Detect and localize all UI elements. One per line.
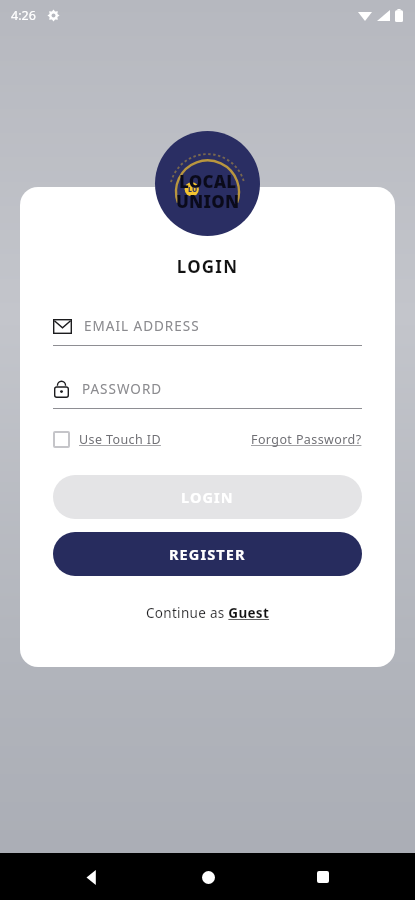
staticText: 4:26 xyxy=(11,7,36,24)
staticText: REGISTER xyxy=(169,544,246,564)
button[interactable]: Forgot Password? xyxy=(251,431,362,448)
button[interactable]: Password xyxy=(53,379,362,398)
button[interactable]: Back xyxy=(69,854,115,900)
staticText: LOCAL xyxy=(179,170,237,193)
staticText: LU xyxy=(188,185,198,195)
other: Password xyxy=(53,379,70,398)
staticText: Continue as Guest xyxy=(146,604,270,622)
button[interactable]: Continue as Guest xyxy=(53,604,362,622)
staticText: Forgot Password? xyxy=(251,431,362,448)
button[interactable]: Email xyxy=(53,317,362,335)
staticText: LOGIN xyxy=(53,255,362,278)
button[interactable]: LOGIN xyxy=(53,475,362,519)
other: Email xyxy=(53,319,72,334)
staticText: LOGIN xyxy=(181,487,234,507)
button[interactable]: REGISTER xyxy=(53,532,362,576)
button[interactable]: Recents xyxy=(300,854,346,900)
button[interactable]: Use Touch ID xyxy=(53,431,161,448)
staticText: Use Touch ID xyxy=(79,431,161,448)
staticText: EMAIL ADDRESS xyxy=(84,317,200,335)
button[interactable]: Home xyxy=(185,854,231,900)
staticText: UNION xyxy=(176,190,240,213)
staticText: PASSWORD xyxy=(82,380,163,398)
